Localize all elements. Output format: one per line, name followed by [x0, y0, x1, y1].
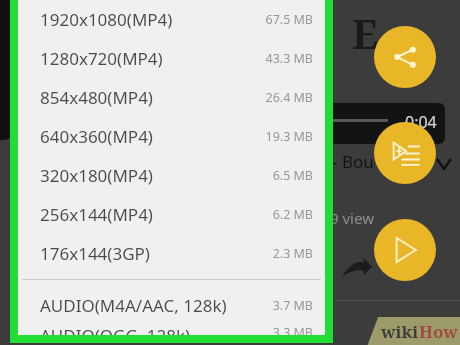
staticText: 256x144(MP4) [40, 203, 153, 226]
staticText: 67.5 MB [265, 11, 313, 28]
button[interactable]: AUDIO(M4A/AAC, 128k) [18, 286, 325, 324]
staticText: 19.3 MB [265, 128, 313, 145]
button[interactable]: 256x144(MP4) [18, 195, 325, 234]
staticText: E [352, 6, 379, 60]
staticText: How [419, 320, 458, 343]
button[interactable]: 854x480(MP4) [18, 78, 325, 117]
staticText: 176x144(3GP) [40, 242, 150, 265]
staticText: 9 view [330, 208, 374, 228]
staticText: 6.5 MB [272, 167, 313, 184]
staticText: 640x360(MP4) [40, 125, 153, 148]
button[interactable]: 320x180(MP4) [18, 156, 325, 195]
staticText: 26.4 MB [265, 89, 313, 106]
button[interactable]: 640x360(MP4) [18, 117, 325, 156]
staticText: AUDIO(M4A/AAC, 128k) [40, 294, 227, 317]
staticText: 43.3 MB [265, 50, 313, 67]
staticText: 3.7 MB [272, 297, 313, 314]
staticText: 1280x720(MP4) [40, 47, 163, 70]
staticText: 2.3 MB [272, 245, 313, 262]
staticText: AUDIO(OGG, 128k) [40, 324, 191, 335]
button[interactable]: AUDIO(OGG, 128k) [18, 324, 325, 335]
staticText: 854x480(MP4) [40, 86, 153, 109]
staticText: 0:04 [405, 111, 437, 133]
button[interactable]: Add to queue [374, 122, 436, 184]
staticText: wiki [381, 320, 419, 343]
staticText: 6.2 MB [272, 206, 313, 223]
staticText: 3.3 MB [272, 324, 313, 335]
button[interactable]: Share [374, 26, 436, 88]
button[interactable]: 1920x1080(MP4) [18, 0, 325, 39]
button[interactable]: 176x144(3GP) [18, 234, 325, 273]
button[interactable]: Play [374, 219, 436, 281]
staticText: - Bou [332, 150, 374, 173]
button[interactable]: 1280x720(MP4) [18, 39, 325, 78]
staticText: 1920x1080(MP4) [40, 8, 173, 31]
staticText: 320x180(MP4) [40, 164, 153, 187]
